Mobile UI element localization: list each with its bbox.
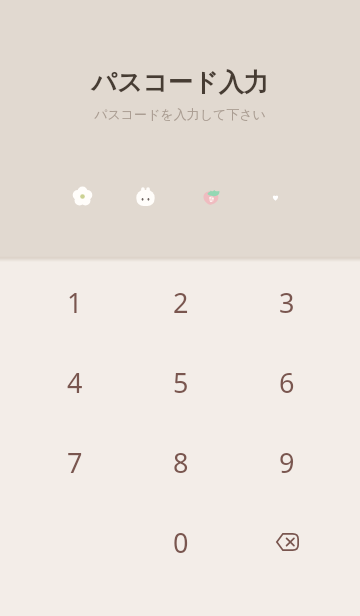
button[interactable]: 1 (22, 262, 128, 342)
staticText: 9 (279, 444, 295, 481)
button[interactable]: 3 (234, 262, 340, 342)
button[interactable]: 9 (234, 422, 340, 502)
button[interactable]: Backspace (234, 502, 340, 582)
staticText: 6 (279, 364, 295, 401)
staticText: パスコード入力 (0, 67, 360, 98)
other: Backspace (267, 522, 307, 562)
staticText: 2 (173, 284, 189, 321)
button[interactable]: 7 (22, 422, 128, 502)
button[interactable]: 8 (128, 422, 234, 502)
button[interactable]: 4 (22, 342, 128, 422)
button[interactable]: 5 (128, 342, 234, 422)
staticText: 7 (67, 444, 83, 481)
staticText: 1 (67, 284, 83, 321)
button[interactable]: 2 (128, 262, 234, 342)
staticText: パスコードを入力して下さい (0, 106, 360, 122)
staticText: 5 (173, 364, 189, 401)
button[interactable]: 0 (128, 502, 234, 582)
staticText: 0 (173, 524, 189, 561)
staticText: 4 (67, 364, 83, 401)
button[interactable]: 6 (234, 342, 340, 422)
staticText: 3 (279, 284, 295, 321)
staticText: 8 (173, 444, 189, 481)
